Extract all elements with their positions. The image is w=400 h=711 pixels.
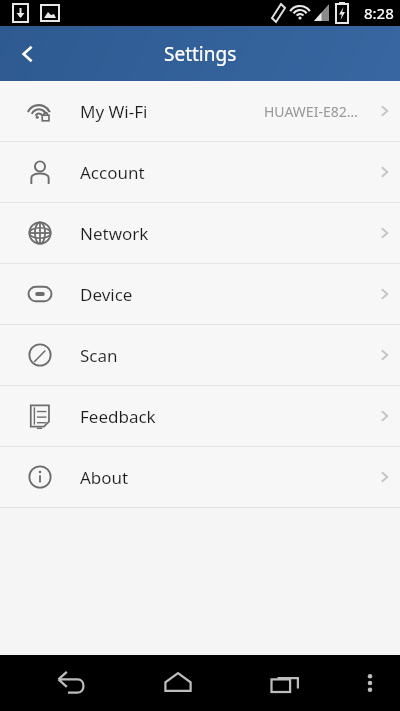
staticText: Feedback: [80, 405, 156, 428]
button[interactable]: Back: [0, 26, 56, 81]
button[interactable]: Device: [0, 264, 400, 324]
button[interactable]: More options: [348, 655, 392, 711]
staticText: 8:28: [364, 3, 394, 23]
button[interactable]: Back: [39, 655, 103, 711]
staticText: HUAWEI-E82…: [264, 102, 358, 121]
button[interactable]: Recent apps: [253, 655, 317, 711]
button[interactable]: Feedback: [0, 386, 400, 446]
staticText: About: [80, 466, 129, 489]
button[interactable]: About: [0, 447, 400, 507]
staticText: My Wi-Fi: [80, 100, 148, 123]
staticText: Network: [80, 222, 149, 245]
staticText: Device: [80, 283, 133, 306]
staticText: Settings: [164, 41, 237, 67]
staticText: Scan: [80, 344, 118, 367]
staticText: Account: [80, 161, 145, 184]
button[interactable]: Account: [0, 142, 400, 202]
button[interactable]: My Wi-Fi: [0, 81, 400, 141]
button[interactable]: Home: [146, 655, 210, 711]
button[interactable]: Scan: [0, 325, 400, 385]
button[interactable]: Network: [0, 203, 400, 263]
